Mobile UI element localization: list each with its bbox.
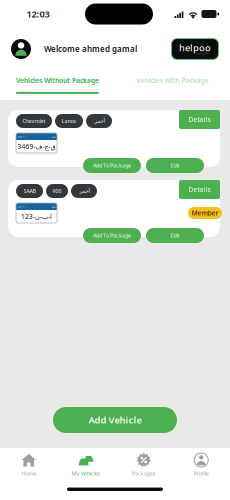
- staticText: ‭3469-ف-ج-ق‬: [17, 142, 55, 151]
- staticText: Lanos: [61, 117, 76, 125]
- staticText: أحمر: [79, 188, 89, 194]
- staticText: مصر: [51, 135, 55, 138]
- staticText: Vehicles With Package: [136, 76, 208, 85]
- button[interactable]: Profile: [172, 452, 230, 477]
- staticText: Member: [191, 209, 218, 217]
- staticText: Details: [188, 185, 210, 194]
- button[interactable]: Vehicles With Package: [115, 76, 230, 94]
- staticText: EGYPT: [18, 205, 26, 208]
- staticText: Add Vehicle: [88, 414, 141, 426]
- staticText: 12:03: [26, 8, 49, 20]
- staticText: SAAB: [23, 187, 35, 195]
- button[interactable]: Add Vehicle: [53, 407, 177, 433]
- staticText: Vehicles Without Package: [16, 76, 99, 85]
- staticText: أحمر: [94, 118, 104, 124]
- button[interactable]: Edit: [146, 158, 204, 173]
- button[interactable]: Add To Package: [83, 228, 141, 243]
- staticText: My Vehicles: [72, 470, 101, 477]
- staticText: Add To Package: [93, 232, 131, 239]
- staticText: Edit: [170, 162, 179, 169]
- button[interactable]: Home: [0, 452, 57, 477]
- button[interactable]: Edit: [146, 228, 204, 243]
- staticText: مصر: [51, 205, 55, 208]
- staticText: helpoo: [179, 41, 211, 54]
- button[interactable]: Details: [179, 180, 220, 199]
- staticText: Details: [188, 115, 210, 124]
- button[interactable]: Add To Package: [83, 158, 141, 173]
- staticText: Home: [21, 470, 36, 477]
- staticText: Add To Package: [93, 162, 131, 169]
- staticText: EGYPT: [18, 135, 26, 138]
- staticText: Packages: [132, 470, 156, 477]
- button[interactable]: Vehicles Without Package: [0, 76, 115, 94]
- staticText: Chevrolet: [22, 117, 45, 125]
- button[interactable]: Details: [179, 110, 220, 129]
- staticText: Edit: [170, 232, 179, 239]
- button[interactable]: My Vehicles: [57, 452, 115, 477]
- staticText: 900: [52, 187, 61, 195]
- staticText: Welcome ahmed gamal: [44, 44, 137, 54]
- staticText: roadside assistance: [193, 53, 208, 55]
- staticText: ‭123-ن-ب-ا‬: [21, 212, 52, 221]
- button[interactable]: Packages: [115, 452, 172, 477]
- staticText: Profile: [194, 470, 209, 477]
